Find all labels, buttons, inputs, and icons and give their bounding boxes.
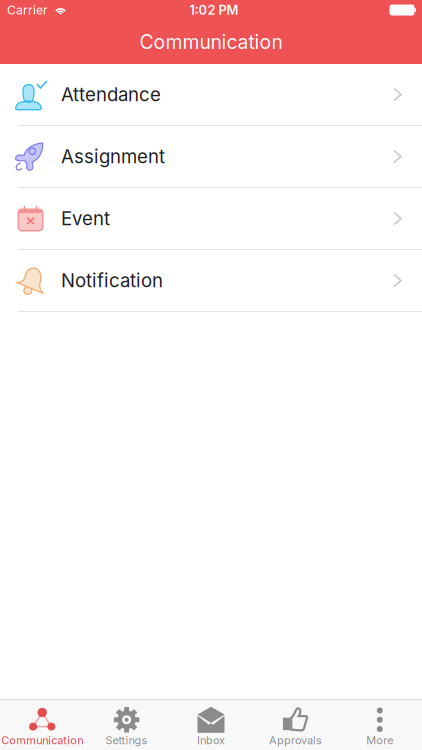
staticText: Carrier [7, 3, 48, 17]
staticText: Approvals [269, 734, 322, 747]
button[interactable]: Attendance [0, 64, 422, 126]
staticText: Attendance [61, 83, 161, 106]
staticText: 1:02 PM [189, 2, 238, 18]
staticText: Communication [139, 30, 282, 54]
button[interactable]: Event [0, 188, 422, 250]
staticText: Notification [61, 269, 163, 292]
button[interactable]: Assignment [0, 126, 422, 188]
button[interactable]: Approvals [253, 700, 338, 750]
button[interactable]: Inbox [169, 700, 253, 750]
button[interactable]: Notification [0, 250, 422, 312]
staticText: Settings [106, 734, 148, 747]
staticText: Event [61, 207, 110, 230]
staticText: Assignment [61, 145, 165, 168]
staticText: Communication [1, 734, 83, 747]
staticText: More [366, 734, 393, 747]
button[interactable]: Settings [84, 700, 169, 750]
button[interactable]: Communication [0, 700, 84, 750]
button[interactable]: More [338, 700, 422, 750]
staticText: Inbox [197, 734, 225, 747]
